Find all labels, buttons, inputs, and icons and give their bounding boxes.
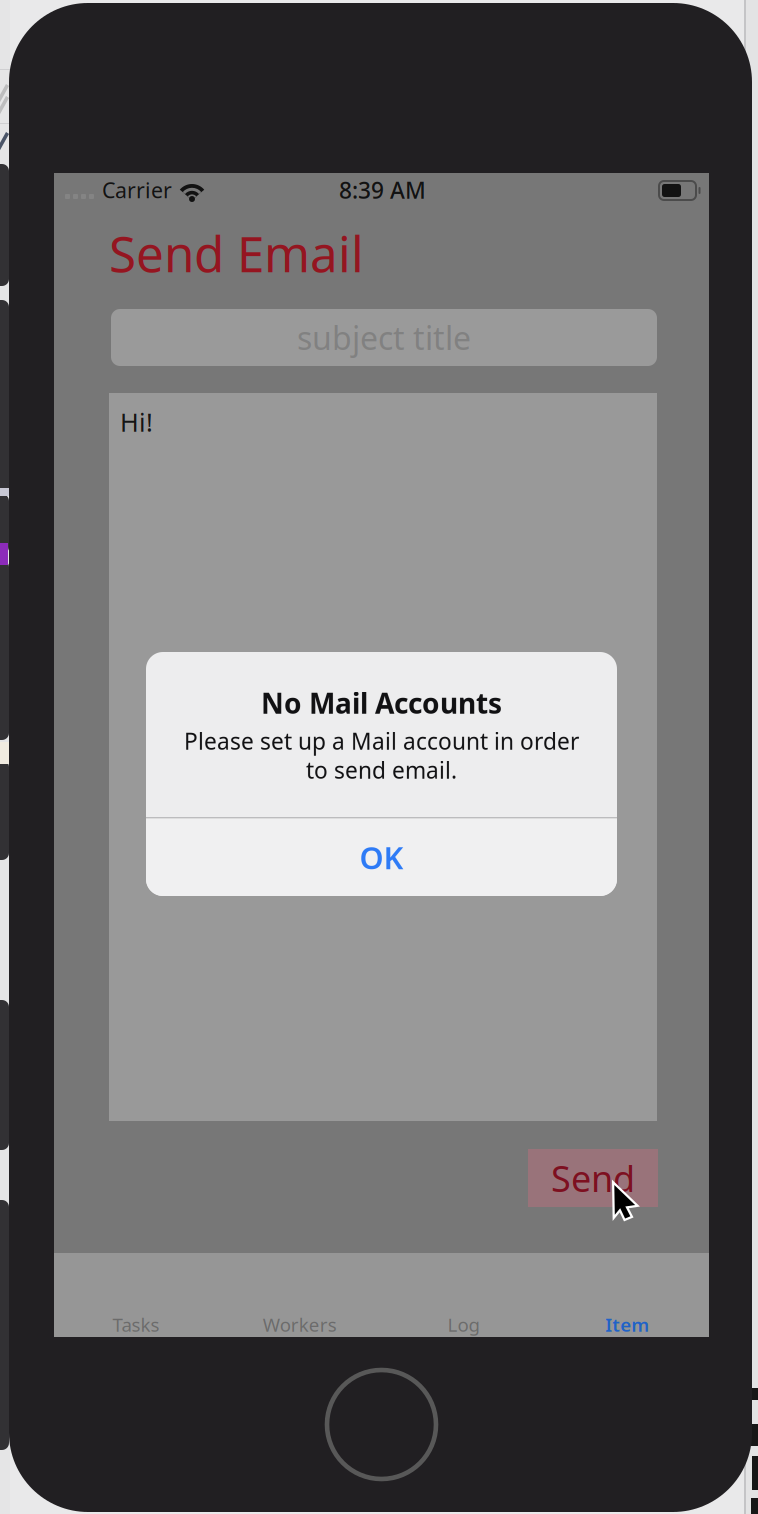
button[interactable]: Log [381,1253,545,1337]
staticText: Send [551,1154,635,1202]
staticText: Please set up a Mail account in order [184,726,579,756]
button[interactable]: OK [146,819,617,896]
button[interactable]: Send [528,1149,658,1207]
staticText: Item [605,1312,649,1337]
staticText: subject title [297,316,471,359]
staticText: 8:39 AM [339,175,426,205]
button[interactable]: Workers [218,1253,382,1337]
staticText: Tasks [112,1312,159,1337]
staticText: Carrier [102,176,172,204]
button[interactable]: Tasks [54,1253,218,1337]
button[interactable]: subject title [111,309,657,366]
staticText: Log [447,1312,479,1337]
staticText: Hi! [120,405,153,439]
staticText: No Mail Accounts [261,684,502,722]
staticText: to send email. [306,755,457,785]
staticText: Workers [263,1312,337,1337]
staticText: OK [359,837,403,878]
staticText: Send Email [109,220,364,286]
button[interactable]: Item [545,1253,709,1337]
